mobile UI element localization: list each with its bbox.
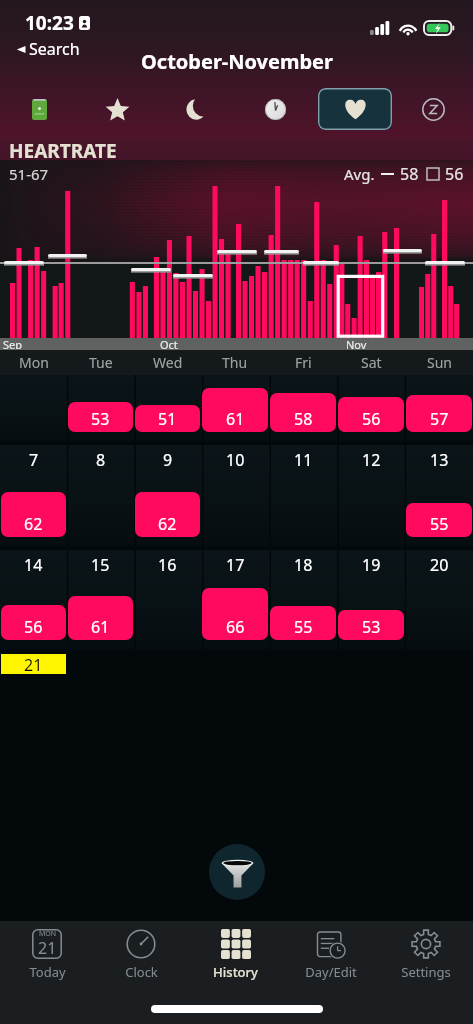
button[interactable]: 19 [337, 550, 405, 653]
staticText: 8 [96, 449, 106, 471]
staticText: Search [29, 38, 80, 60]
button[interactable]: 12 [337, 445, 405, 550]
button[interactable]: 15 [67, 550, 134, 653]
button[interactable]: Favourites [78, 86, 157, 132]
staticText: Oct [160, 337, 178, 349]
button[interactable]: Clock [236, 86, 315, 132]
button[interactable]: Filter [209, 844, 265, 900]
staticText: 14 [24, 554, 43, 576]
button[interactable]: 20 [405, 550, 473, 653]
button[interactable]: 18 [269, 550, 337, 653]
button[interactable]: 14 [0, 550, 67, 653]
staticText: 21 [38, 937, 57, 957]
staticText: Sep [3, 337, 23, 349]
button[interactable]: 7 [0, 445, 67, 550]
staticText: 16 [158, 554, 177, 576]
staticText: 15 [91, 554, 110, 576]
staticText: HEARTRATE [9, 138, 117, 164]
button[interactable]: 17 [201, 550, 269, 653]
staticText: Wed [153, 353, 183, 372]
button[interactable]: 9 [134, 445, 201, 550]
staticText: 61 [226, 408, 245, 430]
button[interactable] [0, 375, 67, 445]
staticText: 51-67 [9, 164, 49, 184]
staticText: Avg. [344, 164, 375, 184]
staticText: 58 [294, 408, 313, 430]
staticText: 55 [294, 616, 313, 638]
staticText: Settings [401, 963, 451, 981]
button[interactable]: 51 [134, 375, 201, 445]
staticText: 62 [158, 513, 177, 535]
staticText: 13 [430, 449, 449, 471]
staticText: 18 [294, 554, 313, 576]
button[interactable]: 11 [269, 445, 337, 550]
staticText: 10 [226, 449, 245, 471]
staticText: 17 [226, 554, 245, 576]
staticText: 19 [362, 554, 381, 576]
button[interactable]: Sleep [157, 86, 236, 132]
staticText: 62 [24, 513, 43, 535]
button[interactable]: 10 [201, 445, 269, 550]
staticText: History [213, 963, 258, 981]
button[interactable]: 8 [67, 445, 134, 550]
staticText: 9 [163, 449, 173, 471]
staticText: 57 [430, 408, 449, 430]
staticText: Mon [19, 353, 49, 372]
button[interactable]: 61 [201, 375, 269, 445]
staticText: Today [29, 963, 66, 981]
button[interactable]: Day/Edit [283, 929, 378, 1001]
button[interactable]: Clock [94, 929, 188, 1001]
staticText: 55 [430, 513, 449, 535]
staticText: Clock [125, 963, 158, 981]
staticText: Thu [222, 353, 248, 372]
staticText: Sun [427, 353, 452, 372]
button[interactable]: 57 [405, 375, 473, 445]
staticText: 53 [91, 408, 110, 430]
staticText: 10:23 [25, 10, 74, 36]
staticText: 12 [362, 449, 381, 471]
staticText: 61 [91, 616, 110, 638]
button[interactable]: MON [0, 929, 94, 1001]
button[interactable]: 16 [134, 550, 201, 653]
staticText: Day/Edit [305, 963, 357, 981]
staticText: 51 [158, 408, 177, 430]
button[interactable]: Heart rate [318, 88, 392, 130]
staticText: MON [39, 929, 57, 939]
staticText: 20 [430, 554, 449, 576]
staticText: 66 [226, 616, 245, 638]
button[interactable]: 56 [337, 375, 405, 445]
staticText: October-November [141, 48, 333, 75]
staticText: 7 [29, 449, 39, 471]
button[interactable]: 53 [67, 375, 134, 445]
button[interactable]: 21 [1, 654, 66, 674]
button[interactable]: Snooze [394, 86, 473, 132]
staticText: 56 [24, 616, 43, 638]
staticText: 11 [294, 449, 313, 471]
button[interactable]: Settings [378, 929, 473, 1001]
staticText: 56 [445, 163, 464, 185]
staticText: Tue [89, 353, 113, 372]
staticText: 21 [24, 654, 43, 674]
staticText: 56 [362, 408, 381, 430]
staticText: 53 [362, 616, 381, 638]
staticText: Nov [346, 337, 367, 349]
staticText: Sat [361, 353, 382, 372]
button[interactable]: 58 [269, 375, 337, 445]
staticText: 58 [400, 163, 419, 185]
button[interactable]: Drinks [0, 86, 78, 132]
button[interactable]: History [188, 929, 283, 1001]
button[interactable]: 13 [405, 445, 473, 550]
staticText: Fri [295, 353, 312, 372]
